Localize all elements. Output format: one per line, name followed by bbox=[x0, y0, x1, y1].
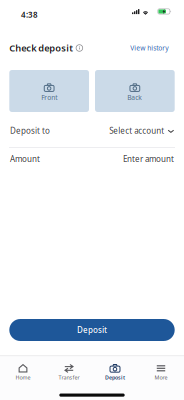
staticText: More bbox=[154, 374, 167, 381]
staticText: Deposit bbox=[105, 374, 125, 381]
button[interactable]: Front bbox=[9, 70, 89, 112]
staticText: Deposit bbox=[77, 325, 107, 335]
button[interactable]: Deposit bbox=[9, 319, 175, 341]
staticText: Front bbox=[41, 93, 57, 102]
staticText: Amount bbox=[10, 154, 40, 164]
staticText: 4:38 bbox=[21, 9, 38, 20]
staticText: Enter amount bbox=[123, 154, 174, 164]
button[interactable]: More bbox=[138, 363, 184, 381]
staticText: View history bbox=[130, 44, 168, 52]
staticText: Check deposit bbox=[9, 42, 73, 54]
staticText: Select account bbox=[109, 125, 164, 136]
staticText: Back bbox=[127, 93, 142, 102]
button[interactable]: Deposit bbox=[92, 363, 138, 381]
button[interactable]: Back bbox=[95, 70, 175, 112]
button[interactable]: View history bbox=[130, 44, 168, 52]
staticText: Home bbox=[15, 374, 30, 381]
staticText: Deposit to bbox=[10, 125, 50, 136]
button[interactable]: Home bbox=[0, 363, 46, 381]
button[interactable]: Amount bbox=[0, 146, 184, 172]
button[interactable]: Transfer bbox=[46, 363, 92, 381]
staticText: Transfer bbox=[58, 374, 79, 381]
button[interactable]: Deposit to bbox=[0, 114, 184, 148]
